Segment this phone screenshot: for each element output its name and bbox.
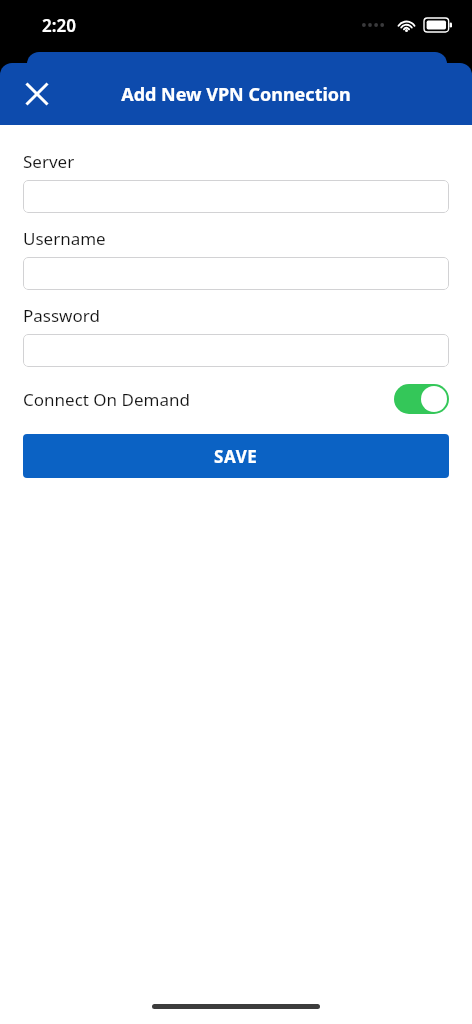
button[interactable] [23, 334, 449, 367]
staticText: Add New VPN Connection [121, 82, 351, 107]
button[interactable]: Connect On Demand toggle, on [394, 384, 449, 414]
staticText: Password [23, 304, 100, 327]
button[interactable]: SAVE [23, 434, 449, 478]
staticText: SAVE [214, 445, 258, 468]
staticText: Connect On Demand [23, 388, 190, 411]
staticText: Server [23, 150, 75, 173]
staticText: 2:20 [42, 14, 76, 37]
button[interactable] [23, 257, 449, 290]
button[interactable]: Close [14, 71, 60, 117]
button[interactable] [23, 180, 449, 213]
staticText: Username [23, 227, 106, 250]
